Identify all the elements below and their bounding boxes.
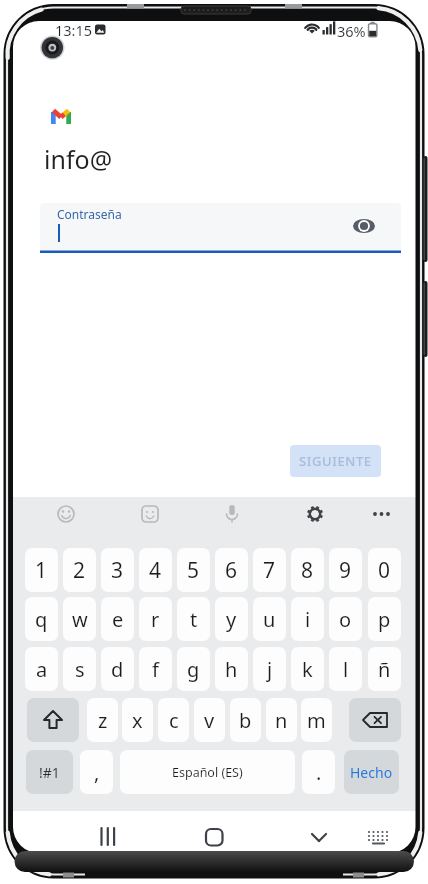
staticText: b [239,707,252,734]
button[interactable] [362,818,396,854]
staticText: v [204,707,215,734]
staticText: w [72,606,88,633]
staticText: Hecho [350,763,393,782]
button[interactable]: u [253,597,286,641]
button[interactable]: r [139,597,172,641]
button[interactable]: 6 [215,548,248,592]
button[interactable] [301,500,329,528]
button[interactable]: k [291,647,324,691]
staticText: Contraseña [57,206,122,222]
button[interactable]: m [301,698,332,742]
button[interactable] [194,818,234,854]
button[interactable]: SIGUIENTE [290,445,381,477]
staticText: d [111,656,124,683]
button[interactable]: o [329,597,362,641]
button[interactable]: 3 [101,548,134,592]
staticText: 7 [263,556,276,585]
button[interactable]: 1 [25,548,58,592]
button[interactable]: . [302,750,335,794]
staticText: 3 [111,556,124,585]
staticText: l [343,656,349,683]
staticText: f [152,656,159,683]
button[interactable] [52,500,80,528]
staticText: p [378,606,391,633]
staticText: Español (ES) [172,764,243,781]
button[interactable]: 9 [329,548,362,592]
staticText: !#1 [39,763,60,782]
button[interactable]: Hecho [344,750,399,794]
staticText: t [190,606,198,633]
button[interactable]: n [266,698,297,742]
button[interactable]: e [101,597,134,641]
staticText: 8 [301,556,314,585]
button[interactable]: a [25,647,58,691]
staticText: . [316,759,322,786]
button[interactable]: f [139,647,172,691]
button[interactable]: !#1 [26,750,73,794]
button[interactable]: v [194,698,225,742]
button[interactable]: t [177,597,210,641]
staticText: g [187,656,200,683]
staticText: ñ [378,656,391,683]
button[interactable]: w [63,597,96,641]
staticText: y [226,606,237,633]
button[interactable]: j [253,647,286,691]
staticText: z [98,707,108,734]
button[interactable]: l [329,647,362,691]
button[interactable]: d [101,647,134,691]
staticText: 13:15 [55,20,93,40]
staticText: n [275,707,288,734]
button[interactable]: q [25,597,58,641]
staticText: 0 [378,556,391,585]
staticText: u [263,606,276,633]
button[interactable]: ñ [368,647,401,691]
staticText: 4 [149,556,162,585]
staticText: info@ [44,142,113,176]
button[interactable]: s [63,647,96,691]
button[interactable]: i [291,597,324,641]
staticText: m [307,707,326,734]
button[interactable] [350,212,378,240]
button[interactable]: p [368,597,401,641]
button[interactable]: 2 [63,548,96,592]
staticText: h [225,656,238,683]
button[interactable]: b [230,698,261,742]
staticText: j [267,656,273,683]
staticText: r [151,606,160,633]
button[interactable]: z [87,698,118,742]
button[interactable] [27,698,79,742]
button[interactable]: x [122,698,153,742]
staticText: k [302,656,313,683]
staticText: a [36,656,48,683]
staticText: x [132,707,143,734]
staticText: s [75,656,85,683]
button[interactable]: , [80,750,113,794]
button[interactable] [40,203,401,251]
button[interactable] [136,500,164,528]
staticText: 2 [73,556,86,585]
staticText: SIGUIENTE [299,452,372,470]
staticText: c [169,707,179,734]
button[interactable] [368,500,396,528]
button[interactable]: Español (ES) [120,750,295,794]
button[interactable]: h [215,647,248,691]
button[interactable]: c [158,698,189,742]
button[interactable] [349,698,401,742]
staticText: 6 [225,556,238,585]
button[interactable]: 8 [291,548,324,592]
button[interactable]: 7 [253,548,286,592]
button[interactable]: 4 [139,548,172,592]
staticText: o [339,606,352,633]
button[interactable]: y [215,597,248,641]
staticText: q [35,606,48,633]
button[interactable]: 0 [368,548,401,592]
button[interactable] [299,818,339,854]
button[interactable]: 5 [177,548,210,592]
staticText: 36% [337,21,366,41]
staticText: , [94,759,100,786]
button[interactable] [218,500,246,528]
staticText: 9 [339,556,352,585]
button[interactable] [88,818,128,854]
staticText: e [112,606,124,633]
button[interactable]: g [177,647,210,691]
